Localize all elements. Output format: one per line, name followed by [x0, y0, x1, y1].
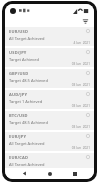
staticText: EUR/CAD: [9, 155, 29, 160]
button[interactable]: Dismiss alert: [86, 71, 90, 75]
staticText: 4 Jun, 2021: [9, 41, 90, 44]
staticText: 03 Jun, 2021: [9, 62, 90, 65]
button[interactable]: Dismiss alert: [86, 92, 90, 96]
staticText: Target Achieved: [9, 57, 39, 62]
staticText: 03 Jun, 2021: [9, 146, 90, 149]
staticText: EUR/USD: [9, 29, 29, 34]
staticText: BTC/USD: [9, 113, 28, 118]
button[interactable]: AUD/JPY: [5, 90, 94, 109]
staticText: All Target Achieved: [9, 141, 45, 146]
button[interactable]: BTC/USD: [5, 111, 94, 130]
button[interactable]: Back: [17, 168, 31, 179]
button[interactable]: EUR/JPY: [5, 132, 94, 151]
staticText: Target 48.5 Achieved: [9, 120, 48, 125]
staticText: EUR/JPY: [9, 134, 27, 139]
staticText: Target 1 Achieved: [9, 99, 43, 104]
staticText: 03 Jun, 2021: [9, 83, 90, 86]
staticText: 03 Jun, 2021: [9, 104, 90, 107]
button[interactable]: GBP/USD: [5, 69, 94, 88]
staticText: GBP/USD: [9, 71, 29, 76]
button[interactable]: Dismiss alert: [86, 29, 90, 33]
button[interactable]: Recent apps: [68, 168, 82, 179]
staticText: Target 48.5 Achieved: [9, 78, 48, 83]
staticText: 03 Jun, 2021: [9, 125, 90, 128]
staticText: AUD/JPY: [9, 92, 28, 97]
button[interactable]: EUR/USD: [5, 27, 94, 46]
staticText: All Target Achieved: [9, 162, 45, 166]
button[interactable]: EUR/CAD: [5, 153, 94, 168]
button[interactable]: Dismiss alert: [86, 113, 90, 117]
button[interactable]: Filter alerts: [82, 18, 89, 25]
button[interactable]: Dismiss alert: [86, 155, 90, 159]
button[interactable]: USD/JPY: [5, 48, 94, 67]
button[interactable]: Dismiss alert: [86, 50, 90, 54]
staticText: All Target Achieved: [9, 36, 45, 41]
button[interactable]: Home: [43, 168, 57, 179]
staticText: USD/JPY: [9, 50, 27, 55]
button[interactable]: Dismiss alert: [86, 134, 90, 138]
